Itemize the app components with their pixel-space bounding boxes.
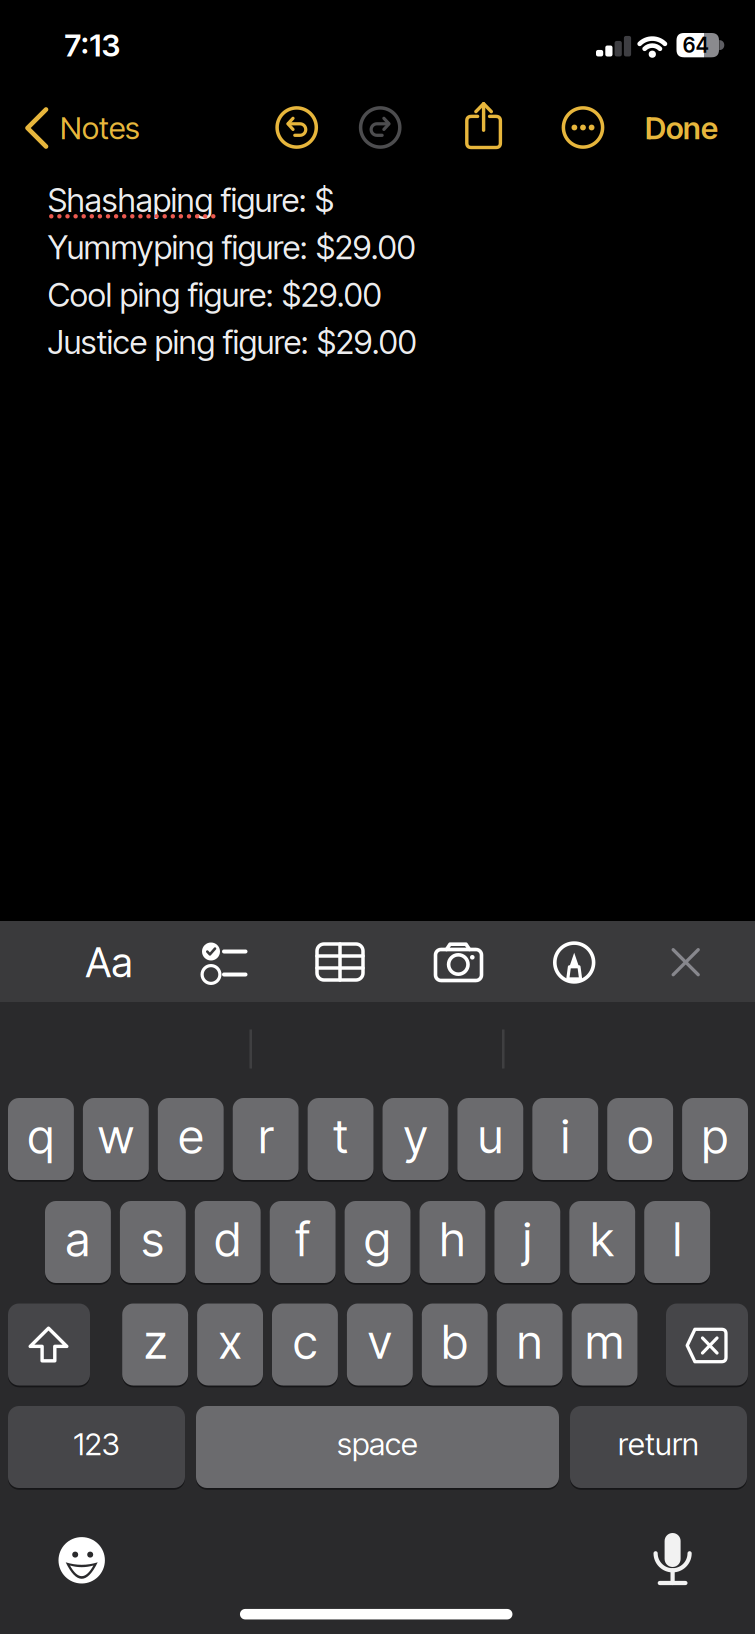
button[interactable]: z [122,1301,188,1387]
button[interactable]: c [272,1301,338,1387]
button[interactable]: p [682,1096,748,1182]
staticText: 123 [73,1425,119,1463]
button[interactable]: k [569,1199,635,1285]
button[interactable]: n [497,1301,563,1387]
staticText: 64 [683,33,709,58]
button[interactable]: space [196,1404,559,1490]
button[interactable]: Camera [431,935,485,989]
button[interactable]: Share [461,102,507,152]
button[interactable]: g [345,1199,410,1285]
button[interactable]: Table [313,935,367,989]
button[interactable]: e [158,1096,224,1182]
button[interactable]: j [494,1199,560,1285]
button[interactable]: Delete [666,1303,748,1389]
button[interactable]: 123 [8,1404,185,1490]
button[interactable]: return [570,1404,747,1490]
staticText: y [403,1107,427,1165]
button[interactable]: h [419,1199,485,1285]
staticText: Shashaping figure: $ [48,180,334,220]
staticText: i [561,1107,570,1165]
staticText: p [702,1107,729,1165]
staticText: b [441,1313,468,1370]
button[interactable]: s [120,1199,186,1285]
staticText: s [141,1210,164,1268]
staticText: v [368,1313,392,1370]
button[interactable]: q [8,1096,74,1182]
staticText: r [258,1107,273,1165]
button[interactable]: u [457,1096,523,1182]
button[interactable]: Checklist [199,936,253,990]
button[interactable]: Undo [274,104,320,150]
staticText: Yummyping figure: $29.00 [48,228,416,267]
staticText: 7:13 [65,27,121,64]
staticText: m [585,1313,624,1370]
staticText: Justice ping figure: $29.00 [48,322,417,362]
button[interactable]: x [197,1301,263,1387]
button[interactable]: Done [626,103,736,153]
button[interactable]: d [195,1199,261,1285]
button[interactable]: Emoji [54,1532,110,1588]
staticText: u [478,1107,503,1165]
staticText: w [98,1107,134,1165]
button[interactable]: r [233,1096,299,1182]
staticText: t [333,1107,348,1165]
staticText: f [295,1210,310,1268]
button[interactable]: t [308,1096,373,1182]
staticText: n [517,1313,543,1370]
button[interactable]: More [560,104,606,150]
staticText: h [439,1210,465,1268]
staticText: e [178,1107,203,1165]
button[interactable]: Dismiss keyboard [659,935,713,989]
button[interactable]: y [382,1096,448,1182]
staticText: o [627,1107,653,1165]
button[interactable]: b [422,1301,488,1387]
button[interactable]: v [347,1301,413,1387]
staticText: a [65,1210,90,1268]
button[interactable]: Shift [8,1303,90,1389]
button[interactable]: i [532,1096,598,1182]
staticText: q [27,1107,54,1165]
staticText: Done [645,109,718,146]
staticText: return [618,1425,699,1463]
staticText: c [293,1313,317,1370]
staticText: space [337,1425,418,1463]
button[interactable]: a [45,1199,111,1285]
button[interactable]: f [270,1199,336,1285]
button[interactable]: l [644,1199,710,1285]
button[interactable]: Redo [357,104,403,150]
button[interactable]: Back [19,102,149,154]
button[interactable]: Format [74,932,144,992]
button[interactable]: m [572,1301,637,1387]
staticText: l [673,1210,682,1268]
staticText: k [590,1210,614,1268]
staticText: g [364,1210,391,1268]
staticText: j [523,1210,532,1268]
staticText: d [214,1210,241,1268]
staticText: x [219,1313,242,1370]
staticText: Cool ping figure: $29.00 [48,275,382,314]
button[interactable]: o [607,1096,673,1182]
button[interactable]: w [83,1096,149,1182]
button[interactable]: Markup [547,935,601,989]
staticText: Aa [85,938,132,987]
staticText: Notes [60,109,140,147]
staticText: z [144,1313,167,1370]
button[interactable]: Dictate [651,1527,695,1589]
